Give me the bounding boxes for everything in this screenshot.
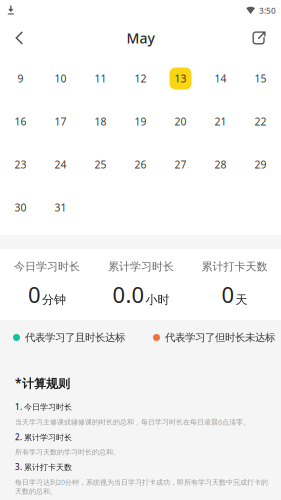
button[interactable]: 9: [0, 57, 40, 100]
button[interactable]: Share: [241, 21, 277, 55]
staticText: 17: [54, 114, 66, 129]
staticText: 26: [134, 157, 146, 172]
button[interactable]: 24: [40, 143, 80, 186]
button[interactable]: 23: [0, 143, 40, 186]
staticText: 3. 累计打卡天数: [15, 461, 72, 472]
staticText: 9: [17, 71, 23, 86]
button[interactable]: 30: [0, 186, 40, 229]
staticText: 31: [54, 200, 66, 215]
button[interactable]: 18: [80, 100, 120, 143]
staticText: 0: [221, 279, 234, 309]
button[interactable]: 22: [240, 100, 280, 143]
staticText: 3:50: [259, 5, 276, 16]
staticText: 分钟: [42, 292, 66, 307]
button[interactable]: 29: [240, 143, 280, 186]
staticText: 所有学习天数的学习时长的总和。: [15, 448, 120, 456]
staticText: 代表学习了且时长达标: [25, 331, 125, 344]
button[interactable]: 19: [120, 100, 160, 143]
button[interactable]: 13: [160, 57, 200, 100]
button[interactable]: 31: [40, 186, 80, 229]
button[interactable]: 21: [200, 100, 240, 143]
button[interactable]: 28: [200, 143, 240, 186]
staticText: 25: [94, 157, 106, 172]
staticText: 28: [214, 157, 226, 172]
button[interactable]: 14: [200, 57, 240, 100]
button[interactable]: 10: [40, 57, 80, 100]
staticText: 代表学习了但时长未达标: [165, 331, 275, 344]
staticText: 15: [254, 71, 266, 86]
staticText: 22: [254, 114, 266, 129]
staticText: 13: [174, 71, 186, 86]
staticText: 天: [235, 292, 247, 307]
staticText: 23: [14, 157, 26, 172]
staticText: May: [126, 28, 154, 48]
staticText: 11: [94, 71, 106, 86]
staticText: 21: [214, 114, 226, 129]
staticText: 30: [14, 200, 26, 215]
staticText: 18: [94, 114, 106, 129]
staticText: 0.0: [112, 279, 144, 309]
staticText: 10: [54, 71, 66, 86]
staticText: 12: [134, 71, 146, 86]
staticText: 2. 累计学习时长: [15, 432, 72, 443]
staticText: 今日学习时长: [14, 260, 80, 273]
staticText: 20: [174, 114, 186, 129]
staticText: 1. 今日学习时长: [15, 401, 72, 412]
staticText: 29: [254, 157, 266, 172]
button[interactable]: 16: [0, 100, 40, 143]
button[interactable]: 12: [120, 57, 160, 100]
staticText: 累计打卡天数: [201, 260, 267, 273]
button[interactable]: 20: [160, 100, 200, 143]
staticText: 每日学习达到20分钟，系统视为当日学习打卡成功，即所有学习天数中完成打卡的天数的…: [15, 477, 268, 496]
staticText: 14: [214, 71, 226, 86]
staticText: 24: [54, 157, 66, 172]
button[interactable]: 27: [160, 143, 200, 186]
staticText: 累计学习时长: [108, 260, 174, 273]
button[interactable]: 25: [80, 143, 120, 186]
staticText: 当天学习主修课或辅修课的时长的总和，每日学习时长在每日凌晨0点清零。: [15, 417, 250, 427]
button[interactable]: 26: [120, 143, 160, 186]
button[interactable]: 15: [240, 57, 280, 100]
staticText: 0: [28, 279, 41, 309]
staticText: 27: [174, 157, 186, 172]
button[interactable]: 17: [40, 100, 80, 143]
staticText: 小时: [145, 292, 169, 307]
staticText: *计算规则: [15, 375, 70, 391]
staticText: 19: [134, 114, 146, 129]
button[interactable]: 11: [80, 57, 120, 100]
staticText: 16: [14, 114, 26, 129]
button[interactable]: Back: [4, 21, 35, 55]
